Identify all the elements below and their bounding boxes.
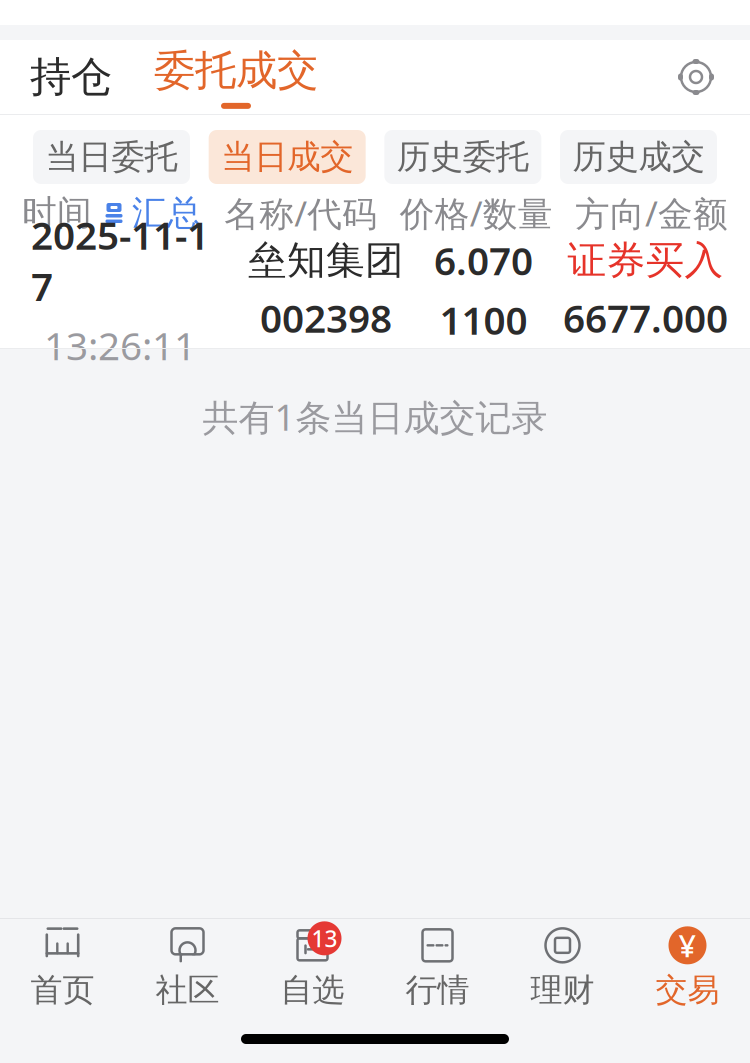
button[interactable]: 13 xyxy=(250,921,375,1013)
button[interactable]: 持仓 xyxy=(22,41,120,113)
button[interactable]: 理财 xyxy=(500,921,625,1013)
staticText: 当日委托 xyxy=(45,136,177,177)
staticText: 交易 xyxy=(655,970,719,1010)
staticText: 社区 xyxy=(155,970,219,1010)
button[interactable]: 行情 xyxy=(375,921,500,1013)
button[interactable]: 设置 xyxy=(668,49,724,105)
staticText: 1100 xyxy=(439,294,527,345)
staticText: 行情 xyxy=(405,970,469,1010)
button[interactable]: 历史成交 xyxy=(560,130,717,184)
staticText: 理财 xyxy=(530,970,594,1010)
staticText: 委托成交 xyxy=(154,45,318,96)
button[interactable]: 社区 xyxy=(125,921,250,1013)
staticText: 002398 xyxy=(260,292,392,343)
staticText: 汇总 xyxy=(132,192,202,234)
staticText: 6.070 xyxy=(434,235,533,286)
button[interactable]: 委托成交 xyxy=(154,39,318,115)
staticText: 首页 xyxy=(30,970,94,1010)
button[interactable]: 当日成交 xyxy=(209,130,366,184)
staticText: 共有1条当日成交记录 xyxy=(202,393,547,441)
staticText: 垒知集团 xyxy=(248,237,404,284)
button[interactable]: ¥ xyxy=(625,921,750,1013)
staticText: 13:26:11 xyxy=(44,320,196,371)
staticText: 2025-11-17 xyxy=(31,209,209,312)
staticText: 名称/代码 xyxy=(224,190,377,236)
staticText: ¥ xyxy=(678,925,696,966)
staticText: 价格/数量 xyxy=(400,190,553,236)
staticText: 当日成交 xyxy=(221,136,353,177)
button[interactable]: 2025-11-17 xyxy=(0,242,750,338)
staticText: 历史成交 xyxy=(572,136,704,177)
staticText: 13 xyxy=(311,923,337,953)
staticText: 时间 xyxy=(22,192,92,234)
staticText: 自选 xyxy=(280,970,344,1010)
button[interactable]: 汇总 xyxy=(102,192,202,234)
staticText: 方向/金额 xyxy=(575,190,728,236)
button[interactable]: 历史委托 xyxy=(384,130,541,184)
staticText: 证券买入 xyxy=(567,237,723,284)
button[interactable]: 首页 xyxy=(0,921,125,1013)
button[interactable]: 当日委托 xyxy=(33,130,190,184)
staticText: 6677.000 xyxy=(563,292,728,343)
staticText: 持仓 xyxy=(30,52,112,102)
staticText: 历史委托 xyxy=(397,136,529,177)
